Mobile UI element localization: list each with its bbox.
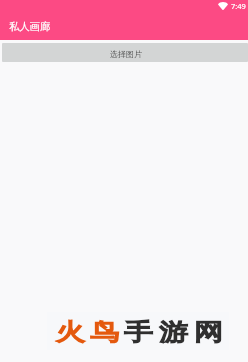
staticText: 火鸟	[53, 318, 122, 347]
staticText: 私人画廊	[9, 20, 51, 33]
other: Wi-Fi	[218, 2, 228, 10]
staticText: 7:49	[231, 1, 246, 11]
button[interactable]: 选择图片	[2, 43, 248, 62]
staticText: 选择图片	[110, 49, 142, 59]
staticText: 手游网	[124, 318, 229, 347]
